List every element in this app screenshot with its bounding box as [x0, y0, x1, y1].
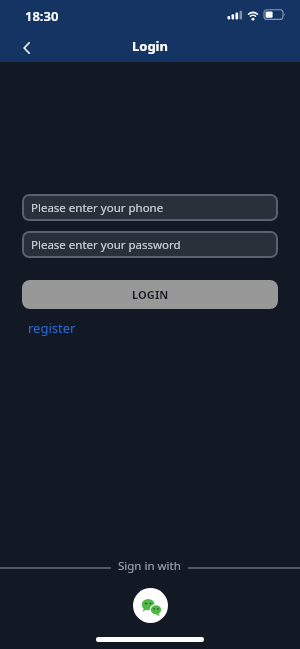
button[interactable]: register: [28, 319, 76, 337]
staticText: Login: [132, 37, 168, 55]
staticText: LOGIN: [132, 287, 169, 302]
staticText: 18:30: [25, 7, 59, 25]
staticText: Please enter your password: [31, 237, 181, 253]
button[interactable]: [15, 36, 39, 60]
button[interactable]: Please enter your phone: [22, 194, 278, 221]
button[interactable]: [133, 588, 168, 623]
button[interactable]: LOGIN: [22, 280, 278, 309]
button[interactable]: Please enter your password: [22, 231, 278, 258]
staticText: Sign in with: [118, 558, 181, 574]
staticText: Please enter your phone: [31, 200, 164, 216]
